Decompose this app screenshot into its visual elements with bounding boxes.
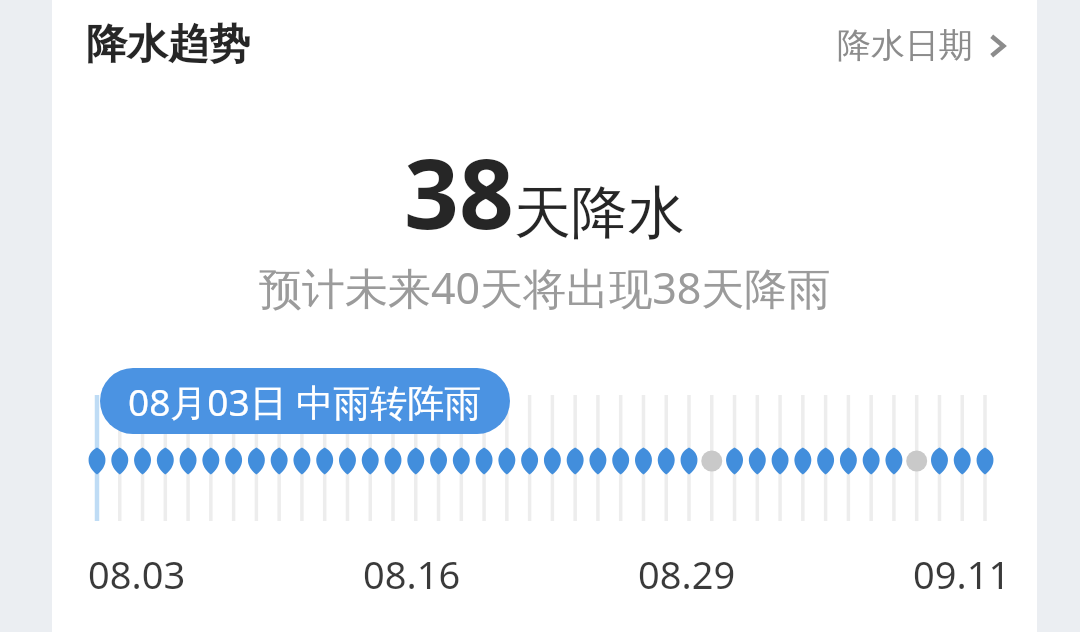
staticText: 09.11 (913, 548, 1011, 600)
staticText: 天降水 (514, 177, 685, 249)
staticText: 08.16 (363, 548, 461, 600)
staticText: 08月03日 中雨转阵雨 (128, 376, 482, 427)
button[interactable]: 降水日期 (837, 24, 1007, 67)
button[interactable]: 降水趋势 (86, 19, 250, 71)
other: 降水日期 (989, 32, 1007, 60)
button[interactable]: 08月03日 中雨转阵雨 (100, 368, 510, 434)
staticText: 08.29 (638, 548, 736, 600)
staticText: 08.03 (88, 548, 186, 600)
staticText: 38 (404, 126, 514, 257)
staticText: 预计未来40天将出现38天降雨 (259, 258, 831, 317)
staticText: 降水日期 (837, 24, 973, 67)
staticText: 降水趋势 (86, 19, 250, 71)
